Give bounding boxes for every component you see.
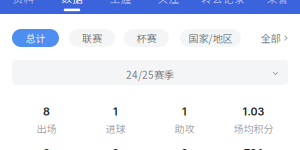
- button[interactable]: 24/25赛季: [12, 60, 288, 85]
- staticText: 数据: [61, 0, 83, 6]
- staticText: 杯赛: [136, 31, 156, 45]
- staticText: 资料: [12, 0, 34, 6]
- staticText: 场均积分: [233, 121, 273, 136]
- button[interactable]: 总计: [12, 29, 59, 47]
- staticText: 国家/地区: [188, 31, 232, 45]
- button[interactable]: 生涯: [111, 0, 130, 14]
- staticText: 转会记录: [201, 0, 245, 6]
- button[interactable]: 转会记录: [207, 0, 239, 14]
- button[interactable]: 杯赛: [124, 29, 169, 47]
- staticText: 荣誉: [266, 0, 288, 6]
- staticText: 1: [182, 105, 187, 118]
- staticText: 进球: [105, 121, 125, 136]
- staticText: 联赛: [82, 31, 102, 45]
- staticText: 8: [43, 105, 50, 118]
- button[interactable]: 荣誉: [268, 0, 287, 14]
- staticText: 全部: [261, 31, 281, 45]
- staticText: 出场: [36, 121, 56, 136]
- staticText: 724: [244, 146, 263, 150]
- staticText: 生涯: [109, 0, 131, 6]
- staticText: 总计: [25, 31, 45, 45]
- staticText: 1.03: [242, 105, 264, 118]
- button[interactable]: 资料: [14, 0, 33, 14]
- staticText: 0: [112, 146, 119, 150]
- staticText: 关注: [157, 0, 179, 6]
- staticText: 0: [43, 146, 50, 150]
- button[interactable]: 联赛: [69, 29, 115, 47]
- staticText: 0: [181, 146, 188, 150]
- staticText: 24/25赛季: [126, 67, 174, 82]
- button[interactable]: 全部: [261, 29, 288, 47]
- staticText: 1: [113, 105, 118, 118]
- button[interactable]: 国家/地区: [180, 29, 241, 47]
- button[interactable]: 关注: [159, 0, 178, 14]
- staticText: 助攻: [174, 121, 194, 136]
- button[interactable]: 数据: [62, 0, 82, 14]
